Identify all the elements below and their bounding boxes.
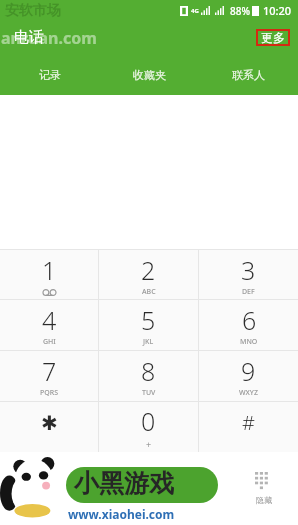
staticText: + — [146, 438, 152, 450]
staticText: 安软市场 — [5, 2, 61, 20]
button[interactable]: 联系人 — [199, 54, 298, 95]
button[interactable]: 记录 — [0, 54, 100, 95]
staticText: MNO — [240, 337, 258, 347]
staticText: 0 — [141, 404, 156, 438]
button[interactable]: 6 — [199, 300, 298, 350]
staticText: 4 — [42, 303, 57, 337]
button[interactable]: 7 — [0, 351, 98, 401]
staticText: www.xiaohei.com — [68, 506, 175, 522]
staticText: 收藏夹 — [133, 68, 166, 82]
button[interactable]: 5 — [99, 300, 198, 350]
staticText: 隐藏 — [256, 495, 272, 505]
staticText: 电话 — [14, 28, 44, 47]
staticText: DEF — [242, 287, 255, 297]
button[interactable]: 2 — [99, 250, 198, 299]
staticText: WXYZ — [239, 388, 258, 398]
button[interactable]: # — [199, 402, 298, 452]
button[interactable]: 1 — [0, 250, 98, 299]
staticText: GHI — [43, 337, 56, 347]
staticText: 小黑游戏 — [74, 468, 174, 499]
staticText: 7 — [42, 354, 57, 388]
staticText: 1 — [42, 253, 57, 287]
staticText: 更多 — [261, 30, 285, 45]
staticText: 6 — [242, 303, 257, 337]
button[interactable]: 8 — [99, 351, 198, 401]
staticText: 3 — [241, 253, 256, 287]
button[interactable]: 4 — [0, 300, 98, 350]
button[interactable]: ✱ — [0, 402, 98, 452]
staticText: JKL — [143, 337, 154, 347]
staticText: 88% — [230, 4, 250, 18]
staticText: 9 — [241, 354, 256, 388]
staticText: PQRS — [40, 388, 59, 398]
staticText: 5 — [141, 303, 156, 337]
button[interactable]: 更多 — [256, 29, 290, 46]
button[interactable]: 0 — [99, 402, 198, 452]
button[interactable]: 收藏夹 — [100, 54, 199, 95]
staticText: 记录 — [39, 68, 61, 82]
button[interactable]: 9 — [199, 351, 298, 401]
staticText: 4G — [191, 7, 199, 15]
staticText: 2 — [141, 253, 156, 287]
staticText: # — [242, 409, 255, 436]
staticText: 联系人 — [232, 68, 265, 82]
staticText: ABC — [142, 287, 156, 297]
button[interactable]: 隐藏键盘 — [249, 466, 278, 511]
staticText: anruan.com — [1, 27, 97, 49]
staticText: 8 — [141, 354, 156, 388]
staticText: TUV — [142, 388, 156, 398]
staticText: 10:20 — [263, 3, 292, 18]
staticText: ✱ — [41, 411, 58, 434]
button[interactable]: 3 — [199, 250, 298, 299]
